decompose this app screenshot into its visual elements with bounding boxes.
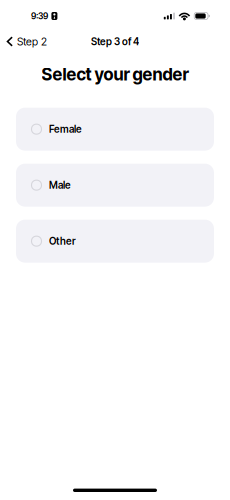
staticText: 9:39: [31, 11, 48, 21]
button[interactable]: Other: [16, 220, 214, 263]
staticText: Step 2: [17, 35, 47, 48]
button[interactable]: Male: [16, 164, 214, 207]
button[interactable]: Back to Step 2: [0, 31, 55, 52]
button[interactable]: Female: [16, 108, 214, 151]
staticText: Step 3 of 4: [91, 35, 139, 48]
staticText: Male: [49, 179, 71, 191]
staticText: Female: [49, 123, 82, 135]
staticText: Select your gender: [41, 64, 188, 85]
staticText: Other: [49, 235, 76, 247]
